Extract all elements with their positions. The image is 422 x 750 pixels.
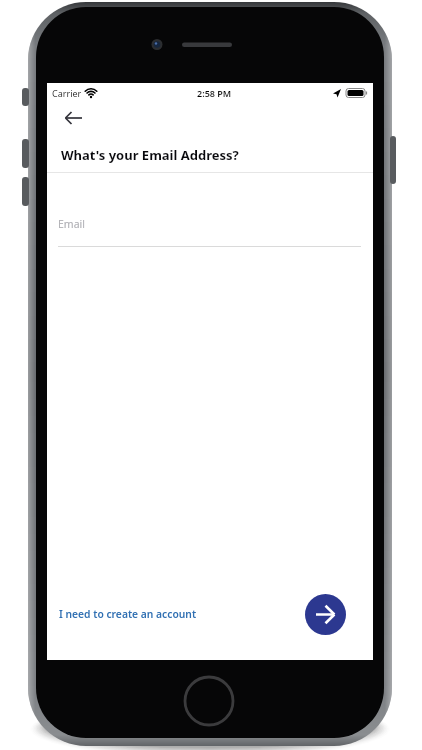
staticText: What's your Email Address? bbox=[61, 146, 239, 164]
button[interactable] bbox=[55, 104, 91, 132]
button[interactable] bbox=[305, 594, 346, 635]
staticText: Email bbox=[58, 217, 85, 231]
staticText: Carrier bbox=[52, 87, 82, 99]
staticText: I need to create an account bbox=[59, 607, 197, 621]
button[interactable]: I need to create an account bbox=[53, 601, 203, 627]
button[interactable]: Email bbox=[58, 205, 361, 248]
staticText: 2:58 PM bbox=[197, 87, 232, 99]
